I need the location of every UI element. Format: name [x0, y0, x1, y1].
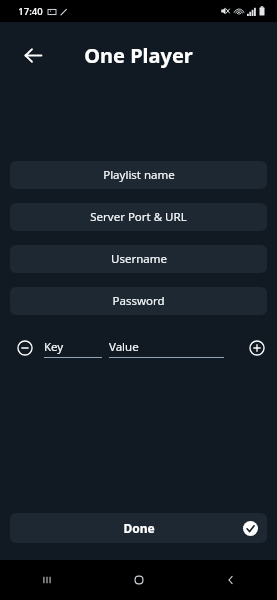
staticText: Done [123, 520, 155, 536]
staticText: 17:40 [18, 5, 43, 18]
button[interactable]: Playlist name [10, 161, 267, 189]
button[interactable]: Key [44, 339, 102, 358]
staticText: One Player [84, 42, 193, 69]
button[interactable]: Username [10, 245, 267, 273]
button[interactable]: Value [109, 339, 224, 358]
button[interactable]: Done [10, 513, 267, 543]
staticText: Username [111, 251, 167, 267]
button[interactable]: Remove field [14, 337, 36, 359]
button[interactable]: Server Port & URL [10, 203, 267, 231]
staticText: Value [109, 339, 139, 355]
button[interactable]: Home [93, 560, 185, 600]
button[interactable]: Password [10, 287, 267, 315]
staticText: Server Port & URL [90, 209, 187, 225]
button[interactable]: Recent apps [0, 560, 93, 600]
button[interactable]: Add field [246, 337, 268, 359]
staticText: Playlist name [103, 167, 175, 183]
staticText: Password [112, 293, 165, 309]
button[interactable]: Back [14, 36, 52, 74]
staticText: Key [44, 339, 64, 355]
button[interactable]: Back [185, 560, 277, 600]
